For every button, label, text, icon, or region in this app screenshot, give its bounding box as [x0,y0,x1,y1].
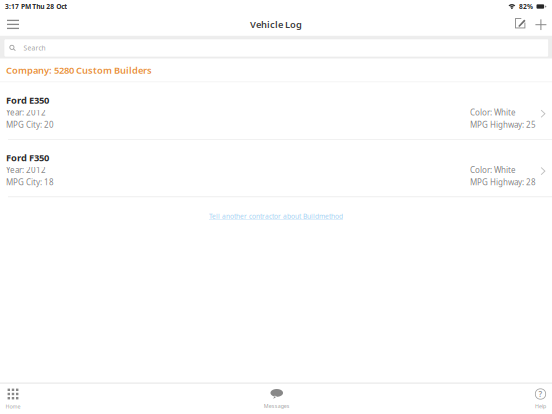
staticText: Year: 2012 [6,107,46,118]
staticText: Year: 2012 [6,164,46,175]
staticText: Company: 5280 Custom Builders [6,64,152,76]
button[interactable]: Ford E350 [0,82,552,139]
button[interactable]: Messages [257,389,297,410]
staticText: Help [535,403,546,410]
button[interactable]: Compose [508,14,530,35]
staticText: Color: White [470,164,516,175]
staticText: Messages [264,402,290,410]
button[interactable]: Ford F350 [0,140,552,196]
staticText: Ford E350 [6,94,49,106]
button[interactable]: Add [530,14,551,35]
staticText: Home [5,403,20,410]
staticText: MPG City: 20 [6,119,54,130]
button[interactable]: Menu [0,14,26,35]
staticText: Color: White [470,107,516,118]
staticText: 82% [519,2,533,11]
staticText: Ford F350 [6,151,49,164]
staticText: MPG Highway: 28 [470,177,536,187]
staticText: 3:17 PM [5,2,31,11]
staticText: ? [538,388,542,399]
staticText: Search [24,43,46,52]
button[interactable]: Home [0,389,33,410]
button[interactable]: Tell another contractor about Buildmetho… [0,197,552,229]
staticText: MPG City: 18 [6,177,54,187]
staticText: Thu 28 Oct [32,2,67,11]
staticText: MPG Highway: 25 [470,119,536,130]
button[interactable]: ? [520,389,552,410]
staticText: Tell another contractor about Buildmetho… [209,212,343,221]
staticText: Vehicle Log [250,18,302,31]
